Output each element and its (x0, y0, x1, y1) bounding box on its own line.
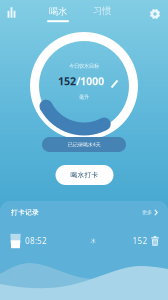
staticText: 08:52 (25, 236, 47, 246)
button[interactable]: 设置 (145, 4, 165, 24)
staticText: /1000 (76, 74, 104, 88)
button[interactable]: 编辑目标 (110, 79, 120, 89)
staticText: 打卡记录 (11, 208, 39, 217)
staticText: 喝水打卡 (70, 171, 98, 179)
staticText: 喝水 (49, 6, 67, 17)
staticText: 已记录喝水4天 (67, 141, 100, 148)
staticText: 更多 (142, 209, 152, 216)
staticText: 152 (58, 74, 76, 88)
staticText: 今日饮水目标 (69, 63, 99, 69)
staticText: 习惯 (93, 5, 111, 17)
button[interactable]: 习惯 (93, 5, 111, 17)
button[interactable]: 08:52 (0, 229, 148, 253)
staticText: 毫升 (79, 94, 89, 100)
button[interactable]: 更多 (142, 209, 158, 216)
button[interactable]: 删除 (150, 236, 160, 248)
staticText: 152 (132, 236, 147, 246)
button[interactable]: 喝水打卡 (55, 165, 113, 185)
button[interactable]: 统计 (7, 7, 16, 18)
button[interactable]: 喝水 (47, 6, 69, 22)
staticText: 水 (90, 238, 95, 244)
